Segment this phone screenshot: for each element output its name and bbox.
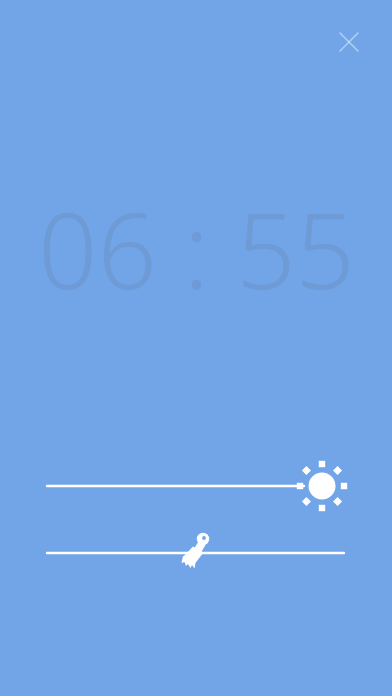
staticText: 06 : 55 bbox=[38, 178, 355, 320]
button[interactable]: Close bbox=[327, 20, 371, 64]
button[interactable]: Brightness bbox=[20, 456, 372, 516]
button[interactable]: Volume bbox=[20, 523, 372, 583]
